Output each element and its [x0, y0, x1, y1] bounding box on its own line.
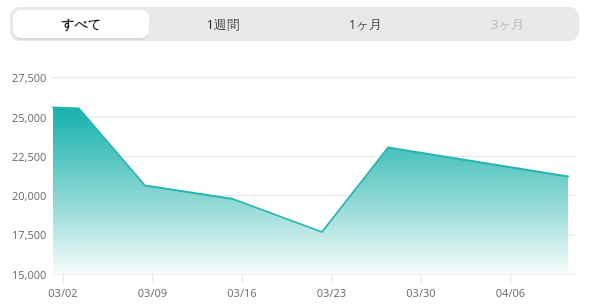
button[interactable]: 1ヶ月: [295, 7, 437, 41]
button[interactable]: すべて: [10, 7, 152, 41]
button[interactable]: 3ヶ月: [437, 7, 579, 41]
button[interactable]: 1週間: [152, 7, 294, 41]
